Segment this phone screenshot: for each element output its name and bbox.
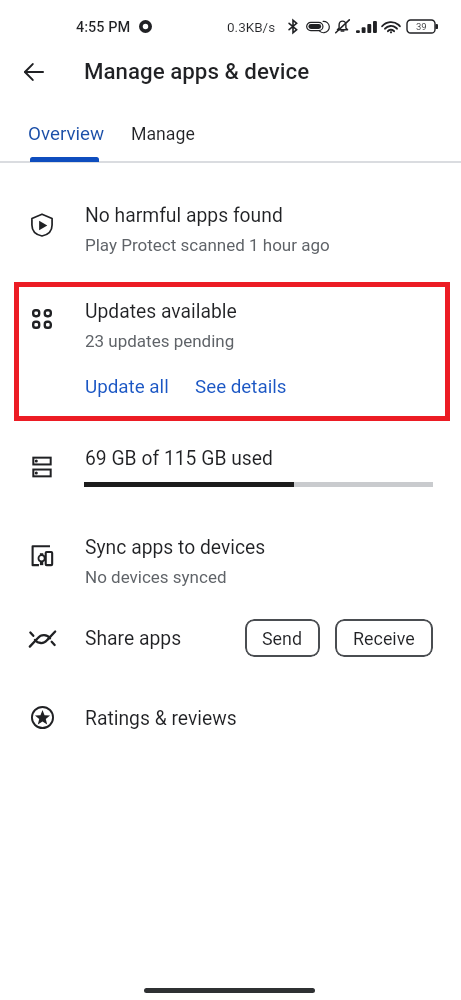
staticText: 0.3KB/s bbox=[227, 19, 276, 35]
button[interactable]: Ratings & reviews bbox=[0, 690, 461, 746]
button[interactable]: Update all bbox=[75, 371, 179, 403]
staticText: 69 GB of 115 GB used bbox=[85, 447, 273, 470]
staticText: See details bbox=[195, 376, 287, 398]
button[interactable]: Overview bbox=[0, 106, 133, 162]
staticText: Sync apps to devices bbox=[85, 536, 266, 559]
staticText: Update all bbox=[85, 376, 169, 398]
button[interactable]: Receive bbox=[335, 619, 433, 657]
staticText: 39 bbox=[416, 21, 427, 32]
staticText: 4:55 PM bbox=[76, 19, 131, 36]
button[interactable]: Back bbox=[13, 52, 53, 92]
button[interactable]: Sync apps to devices bbox=[0, 519, 461, 597]
staticText: Ratings & reviews bbox=[85, 707, 237, 730]
staticText: Receive bbox=[353, 628, 415, 649]
staticText: Updates available bbox=[85, 300, 237, 323]
button[interactable]: 69 GB of 115 GB used bbox=[0, 429, 461, 511]
button[interactable]: Send bbox=[245, 619, 320, 657]
button[interactable]: No harmful apps found bbox=[0, 187, 461, 265]
staticText: Share apps bbox=[85, 627, 182, 650]
staticText: Overview bbox=[28, 123, 105, 145]
staticText: No harmful apps found bbox=[85, 204, 283, 227]
button[interactable]: See details bbox=[185, 371, 297, 403]
staticText: No devices synced bbox=[85, 567, 227, 587]
staticText: Play Protect scanned 1 hour ago bbox=[85, 235, 330, 255]
staticText: Manage apps & device bbox=[84, 58, 310, 84]
staticText: Send bbox=[262, 628, 303, 649]
button[interactable]: Manage bbox=[116, 106, 209, 162]
staticText: 23 updates pending bbox=[85, 331, 235, 351]
staticText: Manage bbox=[131, 124, 195, 145]
